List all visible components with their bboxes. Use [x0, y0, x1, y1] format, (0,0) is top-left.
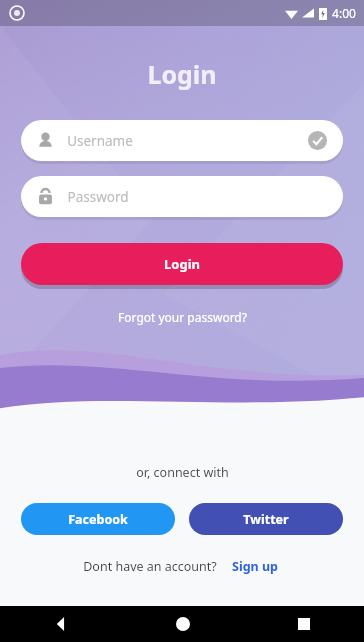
staticText: Twitter — [243, 511, 289, 528]
button[interactable]: Back — [0, 606, 122, 642]
staticText: Sign up — [232, 558, 278, 575]
button[interactable]: Password — [21, 176, 343, 217]
button[interactable]: Sign up — [229, 556, 281, 577]
button[interactable]: Recent apps — [243, 606, 364, 642]
button[interactable]: Twitter — [189, 503, 343, 535]
staticText: Forgot your password? — [118, 309, 247, 325]
button[interactable]: Login — [21, 243, 343, 285]
button[interactable]: Facebook — [21, 503, 175, 535]
button[interactable]: Username — [21, 120, 343, 161]
staticText: 4:00 — [332, 5, 356, 21]
staticText: Password — [67, 188, 129, 206]
button[interactable]: Home — [122, 606, 243, 642]
staticText: Dont have an account? — [83, 558, 217, 575]
button[interactable]: Forgot your password? — [112, 306, 253, 328]
staticText: Login — [147, 57, 217, 91]
staticText: Login — [164, 255, 200, 273]
staticText: Facebook — [68, 511, 128, 528]
staticText: Username — [67, 132, 133, 150]
staticText: or, connect with — [136, 464, 229, 481]
